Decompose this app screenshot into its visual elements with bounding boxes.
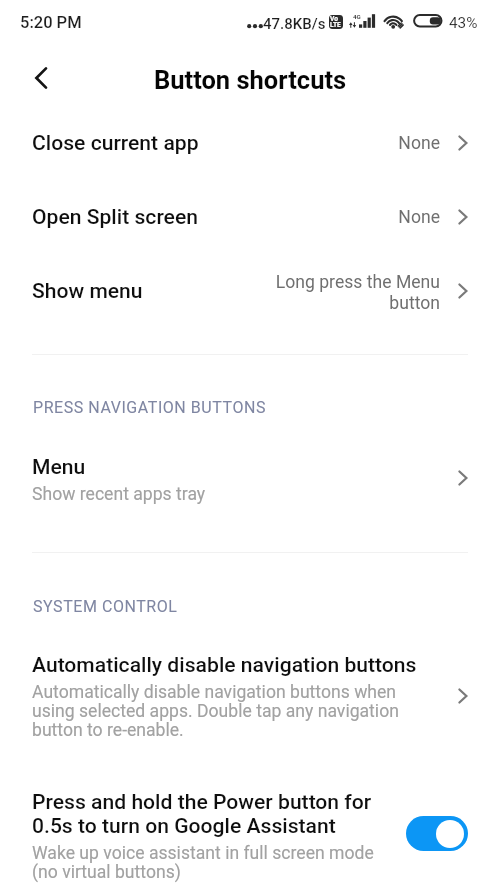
staticText: Menu [32, 454, 86, 479]
button[interactable]: Menu [0, 455, 500, 516]
staticText: None [240, 207, 440, 228]
button[interactable]: Close current app [0, 106, 500, 180]
button[interactable]: Open Split screen [0, 180, 500, 254]
staticText: None [240, 133, 440, 154]
staticText: Button shortcuts [154, 65, 347, 95]
staticText: 5:20 PM [20, 13, 82, 32]
staticText: PRESS NAVIGATION BUTTONS [33, 398, 266, 417]
button[interactable]: Automatically disable navigation buttons [0, 653, 500, 753]
staticText: Open Split screen [32, 204, 198, 229]
staticText: Press and hold the Power button for 0.5s… [32, 789, 372, 838]
staticText: 43% [449, 14, 478, 32]
staticText: Wake up voice assistant in full screen m… [32, 843, 374, 882]
other: Open [456, 684, 476, 708]
staticText: 4G [353, 13, 361, 20]
other: Open [456, 131, 476, 155]
button[interactable]: Press and hold the Power button for 0.5s… [0, 790, 500, 892]
staticText: LTE [330, 21, 341, 29]
button[interactable]: Show menu [0, 254, 500, 328]
other: Open [456, 279, 476, 303]
staticText: Close current app [32, 130, 199, 155]
button[interactable]: Power button Google Assistant toggle [406, 816, 468, 851]
button[interactable]: Back [25, 62, 57, 94]
staticText: Automatically disable navigation buttons [32, 652, 417, 677]
staticText: Automatically disable navigation buttons… [32, 682, 399, 740]
staticText: 47.8KB/s [263, 15, 326, 33]
staticText: SYSTEM CONTROL [33, 597, 178, 616]
staticText: Show menu [32, 278, 143, 303]
other: Open [456, 466, 476, 490]
staticText: Show recent apps tray [32, 484, 206, 505]
other: Open [456, 205, 476, 229]
staticText: Vo [330, 15, 338, 23]
staticText: Long press the Menu button [240, 272, 440, 314]
